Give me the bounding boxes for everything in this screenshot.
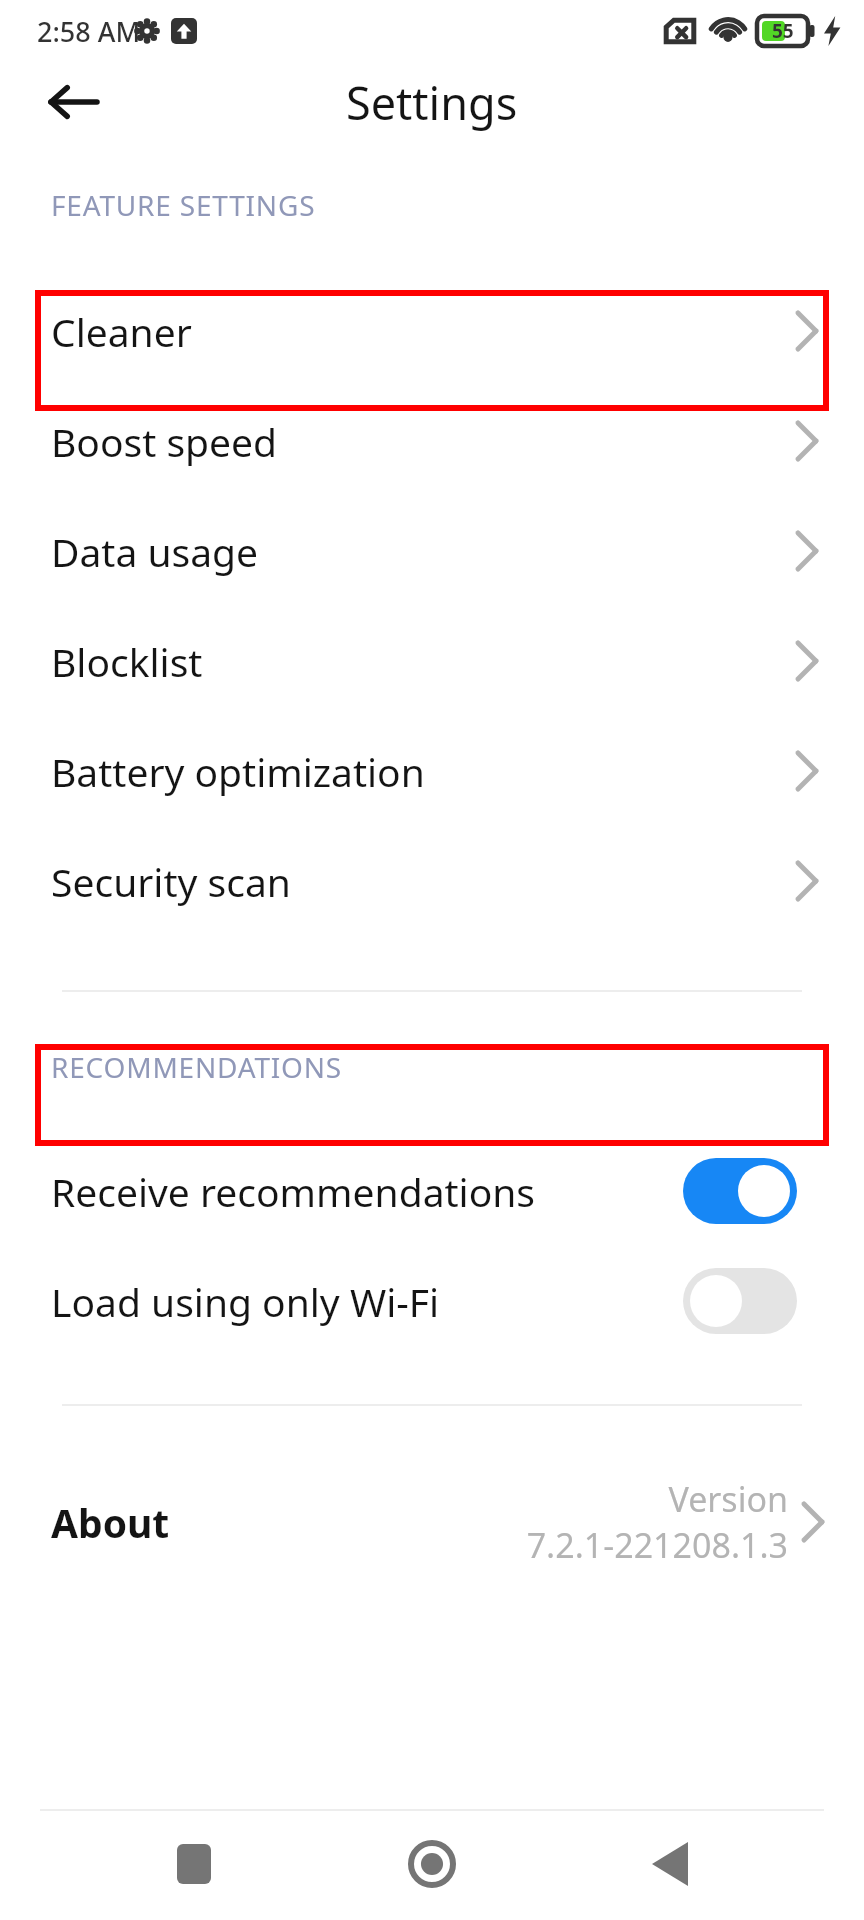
staticText: Receive recommendations [51,1165,536,1218]
staticText: 7.2.1-221208.1.3 [526,1522,788,1568]
staticText: Load using only Wi-Fi [51,1275,440,1328]
button[interactable]: Home [388,1820,476,1908]
staticText: Data usage [51,525,259,578]
staticText: Battery optimization [51,745,425,798]
staticText: Boost speed [51,415,278,468]
staticText: 55 [772,18,794,44]
staticText: RECOMMENDATIONS [51,1048,343,1086]
button[interactable]: Blocklist [0,606,864,716]
staticText: Cleaner [51,305,192,358]
button[interactable]: Enabled [683,1158,797,1224]
button[interactable]: Boost speed [0,386,864,496]
staticText: Settings [346,72,518,133]
button[interactable]: Back [36,65,110,139]
button[interactable]: About [0,1462,864,1582]
staticText: Version [668,1476,788,1522]
button[interactable]: Load using only Wi-Fi [0,1246,864,1356]
button[interactable]: Cleaner [0,276,864,386]
button[interactable]: Security scan [0,826,864,936]
staticText: About [51,1496,170,1549]
staticText: FEATURE SETTINGS [51,186,316,224]
staticText: Security scan [51,855,291,908]
button[interactable]: Recent apps [150,1820,238,1908]
staticText: Blocklist [51,635,203,688]
button[interactable]: Receive recommendations [0,1136,864,1246]
button[interactable]: Back [626,1820,714,1908]
staticText: 2:58 AM [37,13,141,50]
button[interactable]: Data usage [0,496,864,606]
button[interactable]: Disabled [683,1268,797,1334]
button[interactable]: Battery optimization [0,716,864,826]
